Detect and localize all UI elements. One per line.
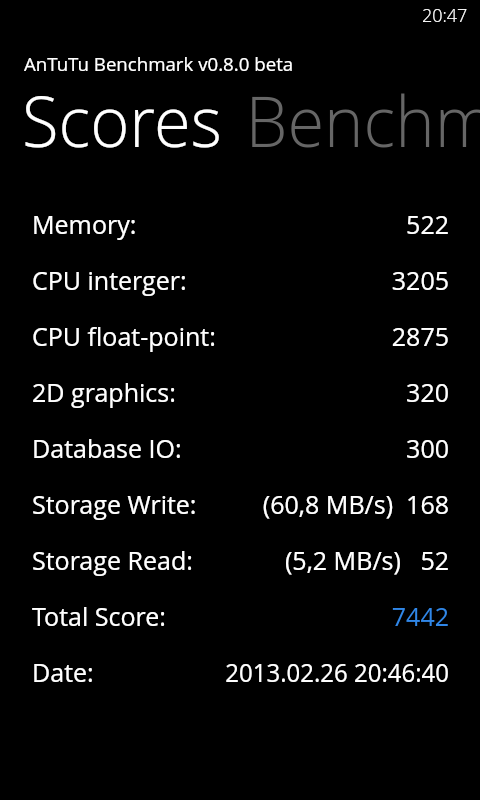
button[interactable]: Total Score: bbox=[0, 587, 480, 643]
staticText: Total Score: bbox=[32, 598, 167, 633]
staticText: 7442 bbox=[391, 598, 449, 633]
staticText: AnTuTu Benchmark v0.8.0 beta bbox=[24, 51, 294, 77]
staticText: Storage Write: bbox=[32, 486, 196, 521]
button[interactable]: CPU interger: bbox=[0, 251, 480, 307]
button[interactable]: Storage Write: bbox=[0, 475, 480, 531]
button[interactable]: CPU float-point: bbox=[0, 307, 480, 363]
staticText: CPU float-point: bbox=[32, 318, 217, 353]
staticText: 522 bbox=[406, 206, 449, 241]
staticText: Database IO: bbox=[32, 430, 182, 465]
staticText: (60,8 MB/s) 168 bbox=[262, 486, 449, 521]
staticText: CPU interger: bbox=[32, 262, 187, 297]
button[interactable]: Memory: bbox=[0, 195, 480, 251]
button[interactable]: 2D graphics: bbox=[0, 363, 480, 419]
staticText: 2013.02.26 20:46:40 bbox=[225, 654, 449, 689]
staticText: 320 bbox=[406, 374, 449, 409]
staticText: 300 bbox=[406, 430, 449, 465]
button[interactable]: Date: bbox=[0, 643, 480, 699]
staticText: Storage Read: bbox=[32, 542, 194, 577]
staticText: 2875 bbox=[391, 318, 449, 353]
button[interactable]: Database IO: bbox=[0, 419, 480, 475]
staticText: Memory: bbox=[32, 206, 137, 241]
staticText: 3205 bbox=[391, 262, 449, 297]
staticText: Date: bbox=[32, 654, 94, 689]
button[interactable]: Status bar clock bbox=[434, 0, 480, 32]
button[interactable]: Scores bbox=[22, 72, 223, 167]
staticText: (5,2 MB/s) 52 bbox=[284, 542, 449, 577]
staticText: 20:47 bbox=[422, 3, 468, 28]
button[interactable]: Benchmark bbox=[245, 72, 480, 167]
button[interactable]: Storage Read: bbox=[0, 531, 480, 587]
staticText: 2D graphics: bbox=[32, 374, 176, 409]
